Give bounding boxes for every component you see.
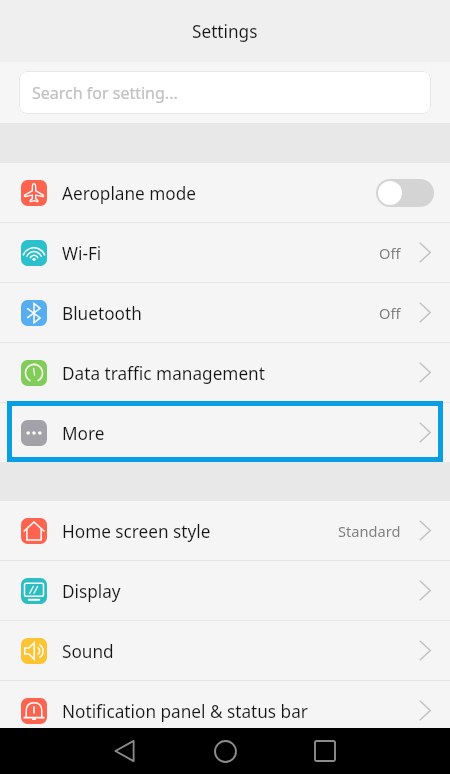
button[interactable]: Home bbox=[185, 728, 265, 774]
button[interactable]: Sound bbox=[0, 621, 450, 680]
button[interactable]: Back bbox=[84, 728, 164, 774]
button[interactable]: Search for setting... bbox=[19, 71, 431, 114]
staticText: Bluetooth bbox=[62, 302, 142, 325]
staticText: Home screen style bbox=[62, 520, 211, 543]
staticText: Notification panel & status bar bbox=[62, 700, 308, 723]
staticText: Aeroplane mode bbox=[62, 182, 196, 205]
staticText: Settings bbox=[192, 20, 258, 43]
staticText: Wi-Fi bbox=[62, 242, 102, 265]
button[interactable]: More bbox=[0, 403, 450, 462]
button[interactable]: Aeroplane mode toggle, off bbox=[376, 179, 434, 207]
staticText: Off bbox=[379, 303, 401, 323]
staticText: Off bbox=[379, 243, 401, 263]
staticText: Sound bbox=[62, 640, 114, 663]
staticText: Display bbox=[62, 580, 121, 603]
button[interactable]: Notification panel & status bar bbox=[0, 681, 450, 740]
button[interactable]: Aeroplane mode bbox=[0, 163, 450, 222]
staticText: Data traffic management bbox=[62, 362, 265, 385]
button[interactable]: Home screen style bbox=[0, 501, 450, 560]
staticText: More bbox=[62, 422, 105, 445]
button[interactable]: Data traffic management bbox=[0, 343, 450, 402]
button[interactable]: Wi-Fi bbox=[0, 223, 450, 282]
button[interactable]: Recent apps bbox=[285, 728, 365, 774]
staticText: Standard bbox=[338, 521, 401, 541]
button[interactable]: Display bbox=[0, 561, 450, 620]
button[interactable]: Bluetooth bbox=[0, 283, 450, 342]
staticText: Search for setting... bbox=[32, 82, 178, 104]
